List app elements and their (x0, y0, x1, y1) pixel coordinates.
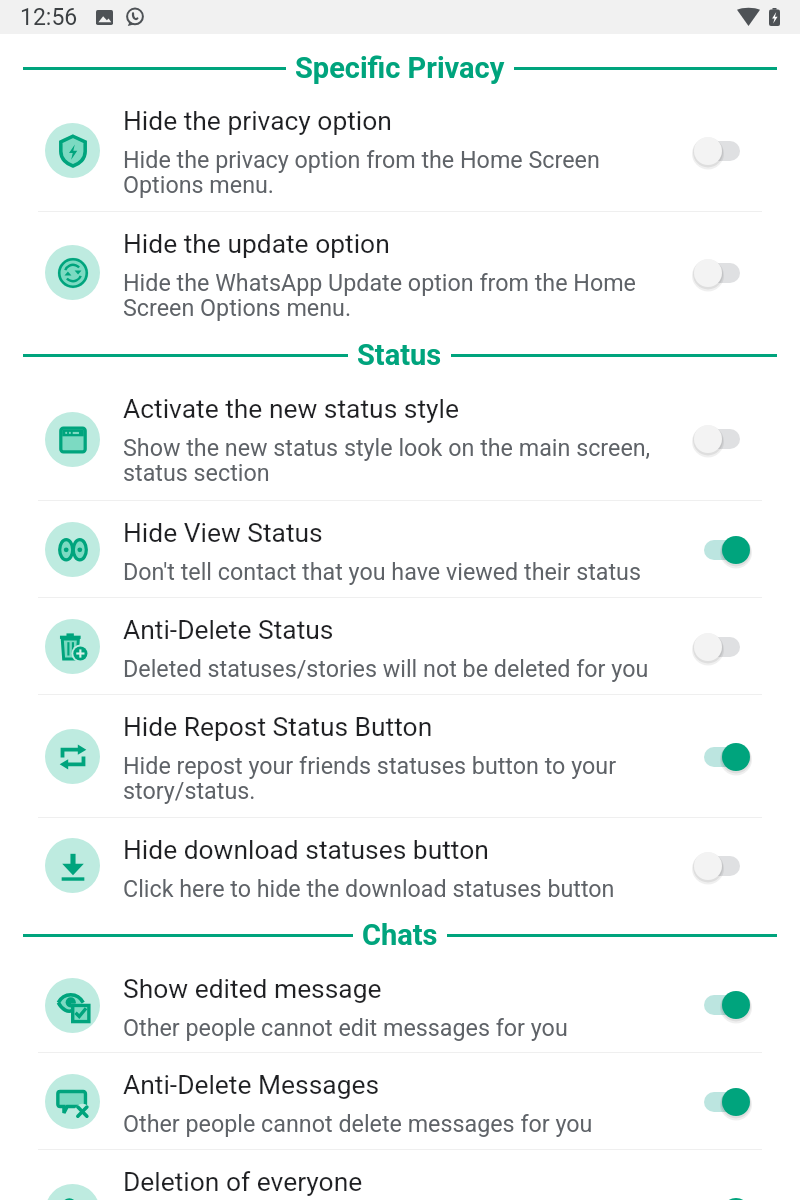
staticText: Status (357, 338, 442, 372)
staticText: Hide the update option (123, 229, 390, 260)
button[interactable]: Hide the privacy option (0, 89, 800, 212)
staticText: Chats (362, 918, 438, 952)
staticText: Deleted statuses/stories will not be del… (123, 655, 649, 682)
staticText: Anti-Delete Status (123, 615, 334, 646)
button[interactable]: Switch on (690, 1084, 756, 1120)
button[interactable]: Switch off (690, 848, 756, 884)
button[interactable]: Switch off (690, 255, 756, 291)
staticText: Click here to hide the download statuses… (123, 875, 615, 902)
button[interactable]: Activate the new status style (0, 377, 800, 501)
staticText: Hide the WhatsApp Update option from the… (123, 269, 636, 321)
staticText: Specific Privacy (295, 51, 505, 85)
button[interactable]: Switch off (690, 421, 756, 457)
staticText: Other people cannot edit messages for yo… (123, 1014, 568, 1041)
button[interactable]: Hide the update option (0, 212, 800, 333)
button[interactable]: Switch off (690, 133, 756, 169)
button[interactable]: Switch on (690, 1194, 756, 1200)
staticText: Show the new status style look on the ma… (123, 434, 651, 486)
staticText: Hide download statuses button (123, 835, 489, 866)
staticText: Hide the privacy option (123, 106, 392, 137)
staticText: Other people cannot delete messages for … (123, 1110, 593, 1137)
button[interactable]: Switch on (690, 987, 756, 1023)
staticText: Don't tell contact that you have viewed … (123, 558, 641, 585)
button[interactable]: Show edited message (0, 957, 800, 1053)
staticText: Deletion of everyone (123, 1167, 363, 1198)
button[interactable]: Switch on (690, 739, 756, 775)
staticText: Hide View Status (123, 518, 323, 549)
staticText: 12:56 (20, 4, 78, 31)
staticText: Hide Repost Status Button (123, 712, 433, 743)
staticText: Show edited message (123, 974, 382, 1005)
button[interactable]: Anti-Delete Messages (0, 1053, 800, 1150)
button[interactable]: Hide Repost Status Button (0, 695, 800, 818)
button[interactable]: Anti-Delete Status (0, 598, 800, 695)
button[interactable]: Hide download statuses button (0, 818, 800, 913)
button[interactable]: Deletion of everyone (0, 1150, 800, 1200)
staticText: Activate the new status style (123, 394, 459, 425)
button[interactable]: Switch on (690, 532, 756, 568)
staticText: Hide repost your friends statuses button… (123, 752, 617, 804)
staticText: Anti-Delete Messages (123, 1070, 380, 1101)
staticText: Hide the privacy option from the Home Sc… (123, 146, 600, 198)
button[interactable]: Switch off (690, 629, 756, 665)
button[interactable]: Hide View Status (0, 501, 800, 598)
